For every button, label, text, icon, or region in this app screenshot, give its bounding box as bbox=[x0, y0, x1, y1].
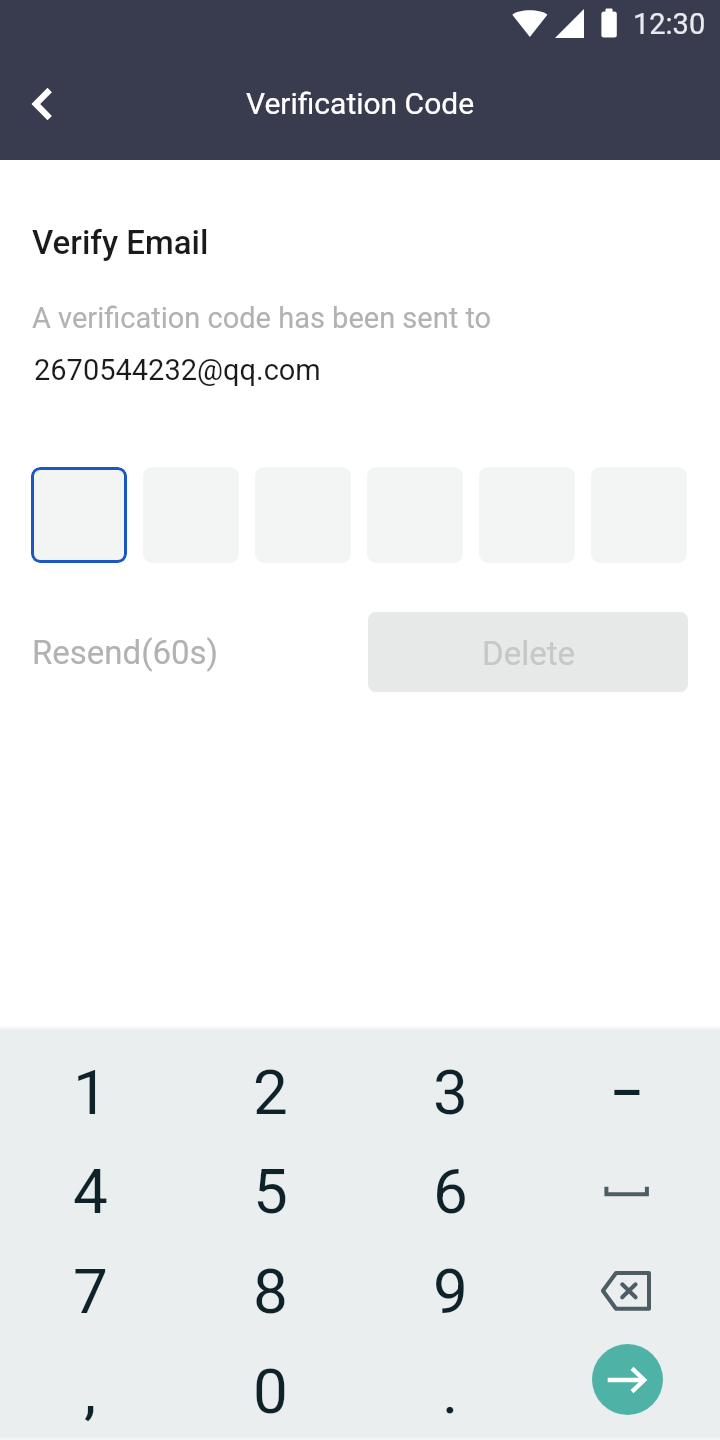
staticText: 7 bbox=[73, 1255, 108, 1328]
button[interactable]: 6 bbox=[360, 1141, 540, 1241]
button[interactable]: 2 bbox=[180, 1042, 360, 1142]
button[interactable]: . bbox=[360, 1341, 540, 1440]
staticText: Verification Code bbox=[0, 86, 720, 121]
button[interactable]: Backspace bbox=[537, 1241, 717, 1341]
button[interactable]: 9 bbox=[360, 1241, 540, 1341]
staticText: 6 bbox=[433, 1155, 468, 1228]
staticText: 4 bbox=[73, 1155, 108, 1228]
staticText: 2 bbox=[253, 1056, 288, 1129]
button[interactable]: 4 bbox=[0, 1141, 180, 1241]
staticText: 8 bbox=[253, 1255, 288, 1328]
button[interactable]: 8 bbox=[180, 1241, 360, 1341]
button[interactable]: Submit bbox=[537, 1329, 717, 1429]
button[interactable]: Resend(60s) bbox=[20, 622, 236, 682]
staticText: 3 bbox=[433, 1056, 468, 1129]
button[interactable]: 0 bbox=[180, 1341, 360, 1440]
button[interactable]: , bbox=[0, 1341, 180, 1440]
button[interactable]: 3 bbox=[360, 1042, 540, 1142]
button[interactable]: Delete bbox=[368, 612, 688, 692]
staticText: A verification code has been sent to bbox=[32, 301, 492, 335]
button[interactable]: Back bbox=[8, 64, 88, 144]
button[interactable]: Space bbox=[537, 1142, 717, 1242]
staticText: 2670544232@qq.com bbox=[34, 353, 321, 387]
staticText: 9 bbox=[433, 1255, 468, 1328]
staticText: . bbox=[442, 1355, 459, 1428]
staticText: 1 bbox=[73, 1056, 108, 1129]
staticText: Resend(60s) bbox=[32, 633, 219, 672]
staticText: 0 bbox=[253, 1355, 288, 1428]
button[interactable] bbox=[31, 467, 127, 563]
button[interactable]: 5 bbox=[180, 1141, 360, 1241]
button[interactable]: Dash bbox=[537, 1042, 717, 1142]
staticText: , bbox=[84, 1355, 97, 1428]
staticText: Verify Email bbox=[32, 223, 209, 262]
staticText: Delete bbox=[482, 634, 575, 673]
button[interactable]: 1 bbox=[0, 1042, 180, 1142]
staticText: 12:30 bbox=[633, 7, 706, 41]
button[interactable]: 7 bbox=[0, 1241, 180, 1341]
staticText: 5 bbox=[253, 1155, 288, 1228]
